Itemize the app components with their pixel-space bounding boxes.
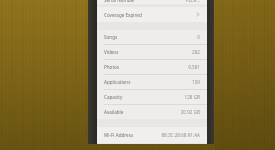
staticText: 109 (192, 79, 200, 85)
staticText: Applications (104, 79, 131, 85)
staticText: 0 (197, 34, 200, 40)
staticText: 9,581 (188, 64, 200, 70)
other: Coverage details (196, 11, 200, 18)
button[interactable]: Videos (97, 45, 207, 59)
staticText: 282 (192, 49, 200, 55)
staticText: Available (104, 109, 124, 115)
staticText: Serial Number (104, 0, 136, 3)
button[interactable]: Capacity (97, 90, 207, 104)
staticText: Songs (104, 34, 118, 40)
staticText: 20.92 GB (180, 109, 200, 115)
button[interactable]: Photos (97, 60, 207, 74)
button[interactable]: Serial Number (97, 0, 207, 4)
staticText: Photos (104, 64, 120, 70)
button[interactable]: Available (97, 105, 207, 119)
staticText: F2LR... (186, 0, 200, 3)
button[interactable]: Songs (97, 30, 207, 44)
staticText: Wi-Fi Address (104, 132, 134, 138)
button[interactable]: Wi-Fi Address (97, 127, 207, 143)
button[interactable]: Applications (97, 75, 207, 89)
staticText: Capacity (104, 94, 123, 100)
staticText: 128 GB (184, 94, 200, 100)
button[interactable]: Coverage Expired (97, 7, 207, 22)
staticText: 88:3C:28:68:91:AA (161, 132, 200, 138)
staticText: Coverage Expired (104, 12, 142, 18)
staticText: Videos (104, 49, 119, 55)
